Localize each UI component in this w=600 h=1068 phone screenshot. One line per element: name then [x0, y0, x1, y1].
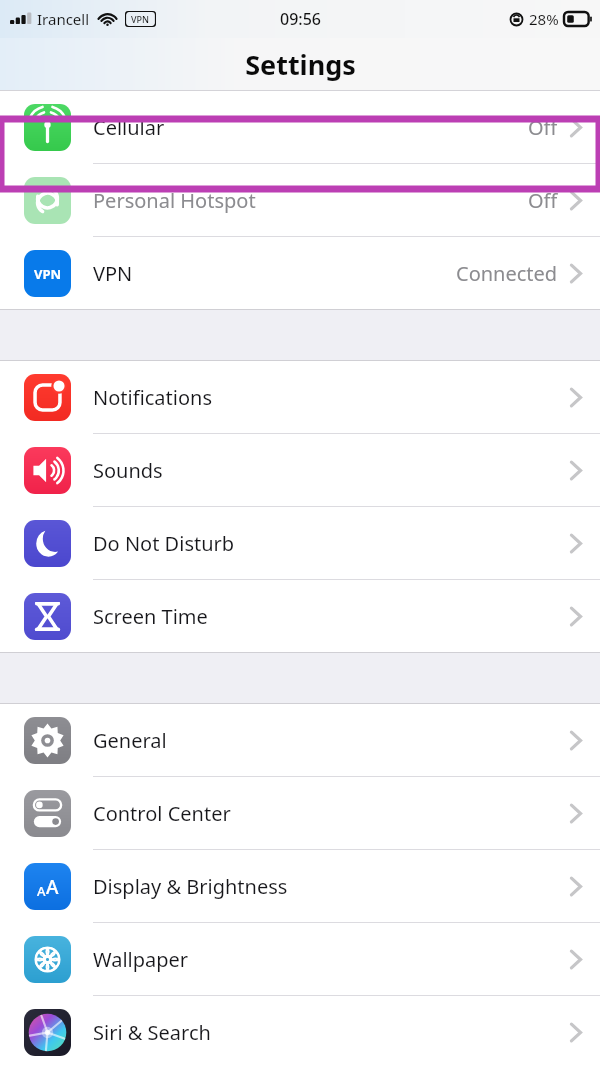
- button[interactable]: Cellular: [0, 91, 600, 164]
- staticText: Off: [528, 114, 558, 141]
- staticText: Sounds: [93, 457, 163, 484]
- staticText: Personal Hotspot: [93, 187, 256, 214]
- staticText: General: [93, 727, 167, 754]
- staticText: Irancell: [37, 9, 90, 29]
- button[interactable]: Siri & Search: [0, 996, 600, 1068]
- staticText: VPN: [131, 13, 150, 25]
- staticText: Cellular: [93, 114, 165, 141]
- staticText: Display & Brightness: [93, 873, 288, 900]
- button[interactable]: Do Not Disturb: [0, 507, 600, 580]
- staticText: Screen Time: [93, 603, 208, 630]
- staticText: VPN: [93, 260, 133, 287]
- staticText: VPN: [34, 265, 62, 283]
- button[interactable]: Notifications: [0, 361, 600, 434]
- staticText: Control Center: [93, 800, 231, 827]
- staticText: Notifications: [93, 384, 212, 411]
- staticText: Siri & Search: [93, 1019, 211, 1046]
- staticText: Connected: [456, 260, 558, 287]
- staticText: 09:56: [280, 8, 321, 30]
- staticText: Off: [528, 187, 558, 214]
- button[interactable]: VPN: [0, 237, 600, 309]
- staticText: A: [37, 882, 46, 900]
- button[interactable]: Wallpaper: [0, 923, 600, 996]
- button[interactable]: Sounds: [0, 434, 600, 507]
- button[interactable]: Control Center: [0, 777, 600, 850]
- button[interactable]: Screen Time: [0, 580, 600, 652]
- staticText: Do Not Disturb: [93, 530, 235, 557]
- staticText: 28%: [529, 9, 559, 29]
- button[interactable]: General: [0, 704, 600, 777]
- button[interactable]: Personal Hotspot: [0, 164, 600, 237]
- button[interactable]: A: [0, 850, 600, 923]
- staticText: Settings: [245, 46, 356, 83]
- staticText: Wallpaper: [93, 946, 189, 973]
- staticText: A: [46, 874, 59, 900]
